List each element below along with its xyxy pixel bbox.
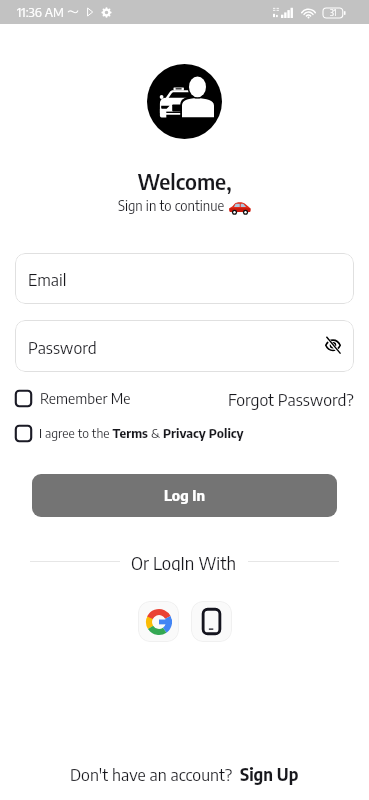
staticText: Password (28, 336, 97, 357)
button[interactable]: Password (15, 320, 354, 372)
button[interactable]: Email (15, 253, 354, 304)
button[interactable]: Forgot Password? (228, 388, 354, 409)
button[interactable]: Sign in with Google (138, 601, 179, 642)
button[interactable]: Remember Me (15, 389, 131, 408)
button[interactable]: I agree to the Terms & Privacy Policy (15, 423, 354, 443)
staticText: Welcome, (0, 167, 369, 195)
button[interactable]: Show password (320, 333, 346, 359)
staticText: 31 (330, 8, 337, 18)
staticText: Don't have an account? (70, 763, 233, 784)
staticText: Log In (164, 486, 206, 505)
staticText: Email (28, 268, 67, 289)
button[interactable]: Sign Up (240, 763, 299, 784)
staticText: Or LogIn With (131, 551, 237, 571)
staticText: 11:36 AM (17, 4, 64, 20)
staticText: I agree to the Terms & Privacy Policy (39, 425, 244, 441)
staticText: Remember Me (40, 389, 131, 408)
staticText: Sign in to continue (118, 197, 225, 215)
button[interactable]: Sign in with phone (191, 601, 232, 642)
button[interactable]: Log In (32, 474, 337, 517)
